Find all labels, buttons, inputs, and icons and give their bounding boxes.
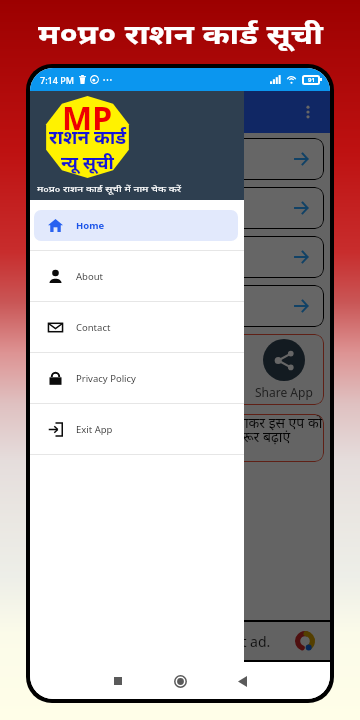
staticText: Exit App xyxy=(76,423,113,436)
button[interactable]: Back xyxy=(230,669,254,693)
button[interactable]: More Apps xyxy=(149,339,210,400)
button[interactable]: Home xyxy=(30,200,244,250)
staticText: म०प्र० राशन कार्ड सूची में नाम चेक करें xyxy=(37,183,182,194)
button[interactable]: Privacy Policy xyxy=(30,353,244,403)
button[interactable]: Exit App xyxy=(30,404,244,454)
button[interactable]: More options xyxy=(297,101,319,123)
button[interactable]: Open navigation drawer xyxy=(42,101,64,123)
staticText: ग्राम पंचायत सूची xyxy=(48,249,119,265)
button[interactable]: Share App xyxy=(255,339,313,400)
staticText: 7:14 PM xyxy=(40,74,74,86)
button[interactable]: Contact xyxy=(30,302,244,352)
button[interactable]: राशन कार्ड स्टेटस xyxy=(36,285,324,327)
button[interactable]: About xyxy=(30,251,244,301)
button[interactable]: म०प्र० राशन कार्ड सूची xyxy=(36,138,324,180)
staticText: About xyxy=(76,270,103,283)
staticText: म०प्र० राशन कार्ड सूची xyxy=(48,151,141,167)
staticText: Contact xyxy=(76,321,111,334)
staticText: MP xyxy=(62,96,113,140)
staticText: राशन कार्ड स्टेटस xyxy=(48,298,118,314)
staticText: कृपया आप ऊपर दिए गए शेयर बटन दबाकर इस एप… xyxy=(46,414,323,432)
staticText: राशन कार्ड xyxy=(49,124,127,150)
staticText: MP Ration Card List xyxy=(82,103,213,122)
staticText: Test ad. xyxy=(220,632,271,651)
staticText: Rate App xyxy=(54,384,105,400)
staticText: Privacy Policy xyxy=(76,372,136,385)
button[interactable]: Recent apps xyxy=(106,669,130,693)
button[interactable]: राशन कार्ड पात्रता पर्ची xyxy=(36,187,324,229)
staticText: राशन कार्ड पात्रता पर्ची xyxy=(48,200,140,216)
staticText: Share App xyxy=(255,384,313,400)
button[interactable]: Rate App xyxy=(54,339,105,400)
button[interactable]: Home xyxy=(168,669,192,693)
staticText: अपने दोस्तों के साथ शेयर कर हौसला जरूर ब… xyxy=(46,427,291,446)
button[interactable]: ग्राम पंचायत सूची xyxy=(36,236,324,278)
staticText: म०प्र० राशन कार्ड सूची xyxy=(37,16,323,51)
staticText: Home xyxy=(76,219,105,232)
button[interactable]: Close navigation drawer xyxy=(30,91,330,662)
staticText: न्यू सूची xyxy=(61,150,114,175)
staticText: 91 xyxy=(308,76,315,84)
